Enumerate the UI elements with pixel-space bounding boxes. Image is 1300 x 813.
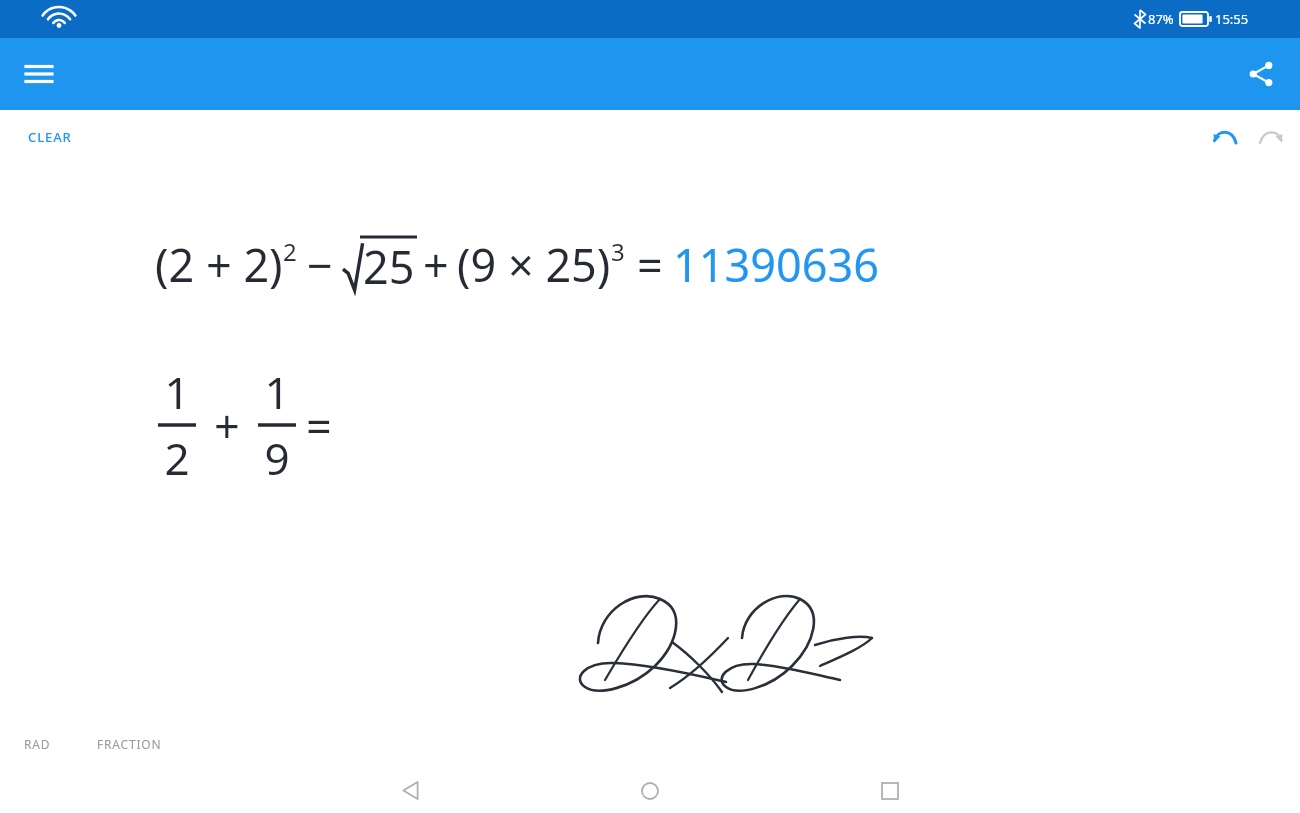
staticText: 1 <box>264 362 290 422</box>
staticText: − <box>307 234 333 295</box>
button[interactable]: Share <box>1240 53 1282 95</box>
button[interactable]: Undo <box>1200 116 1248 164</box>
staticText: (9 × 25) <box>457 234 611 295</box>
staticText: 25 <box>363 236 415 295</box>
staticText: 1 <box>164 362 190 422</box>
button[interactable]: Home <box>626 768 674 813</box>
staticText: + <box>214 395 240 456</box>
staticText: 87% <box>1148 10 1174 28</box>
staticText: = <box>637 234 663 295</box>
staticText: 2 <box>283 235 297 268</box>
staticText: 3 <box>611 235 625 268</box>
button[interactable]: CLEAR <box>14 120 86 154</box>
staticText: 11390636 <box>673 234 879 295</box>
button[interactable]: Back <box>386 768 434 813</box>
staticText: 2 <box>164 428 190 488</box>
button[interactable]: Redo <box>1248 116 1296 164</box>
staticText: FRACTION <box>97 736 162 752</box>
staticText: RAD <box>24 736 51 752</box>
staticText: = <box>306 395 332 456</box>
staticText: + <box>423 234 449 295</box>
staticText: 9 <box>264 428 290 488</box>
staticText: 15:55 <box>1215 10 1249 28</box>
staticText: CLEAR <box>28 128 72 146</box>
button[interactable]: FRACTION <box>85 728 174 760</box>
staticText: (2 + 2) <box>155 234 283 295</box>
button[interactable]: (2 + 2) <box>155 233 879 295</box>
button[interactable]: Menu <box>18 53 60 95</box>
button[interactable]: RAD <box>12 728 63 760</box>
button[interactable]: Recents <box>866 768 914 813</box>
button[interactable]: 1 <box>158 362 332 488</box>
